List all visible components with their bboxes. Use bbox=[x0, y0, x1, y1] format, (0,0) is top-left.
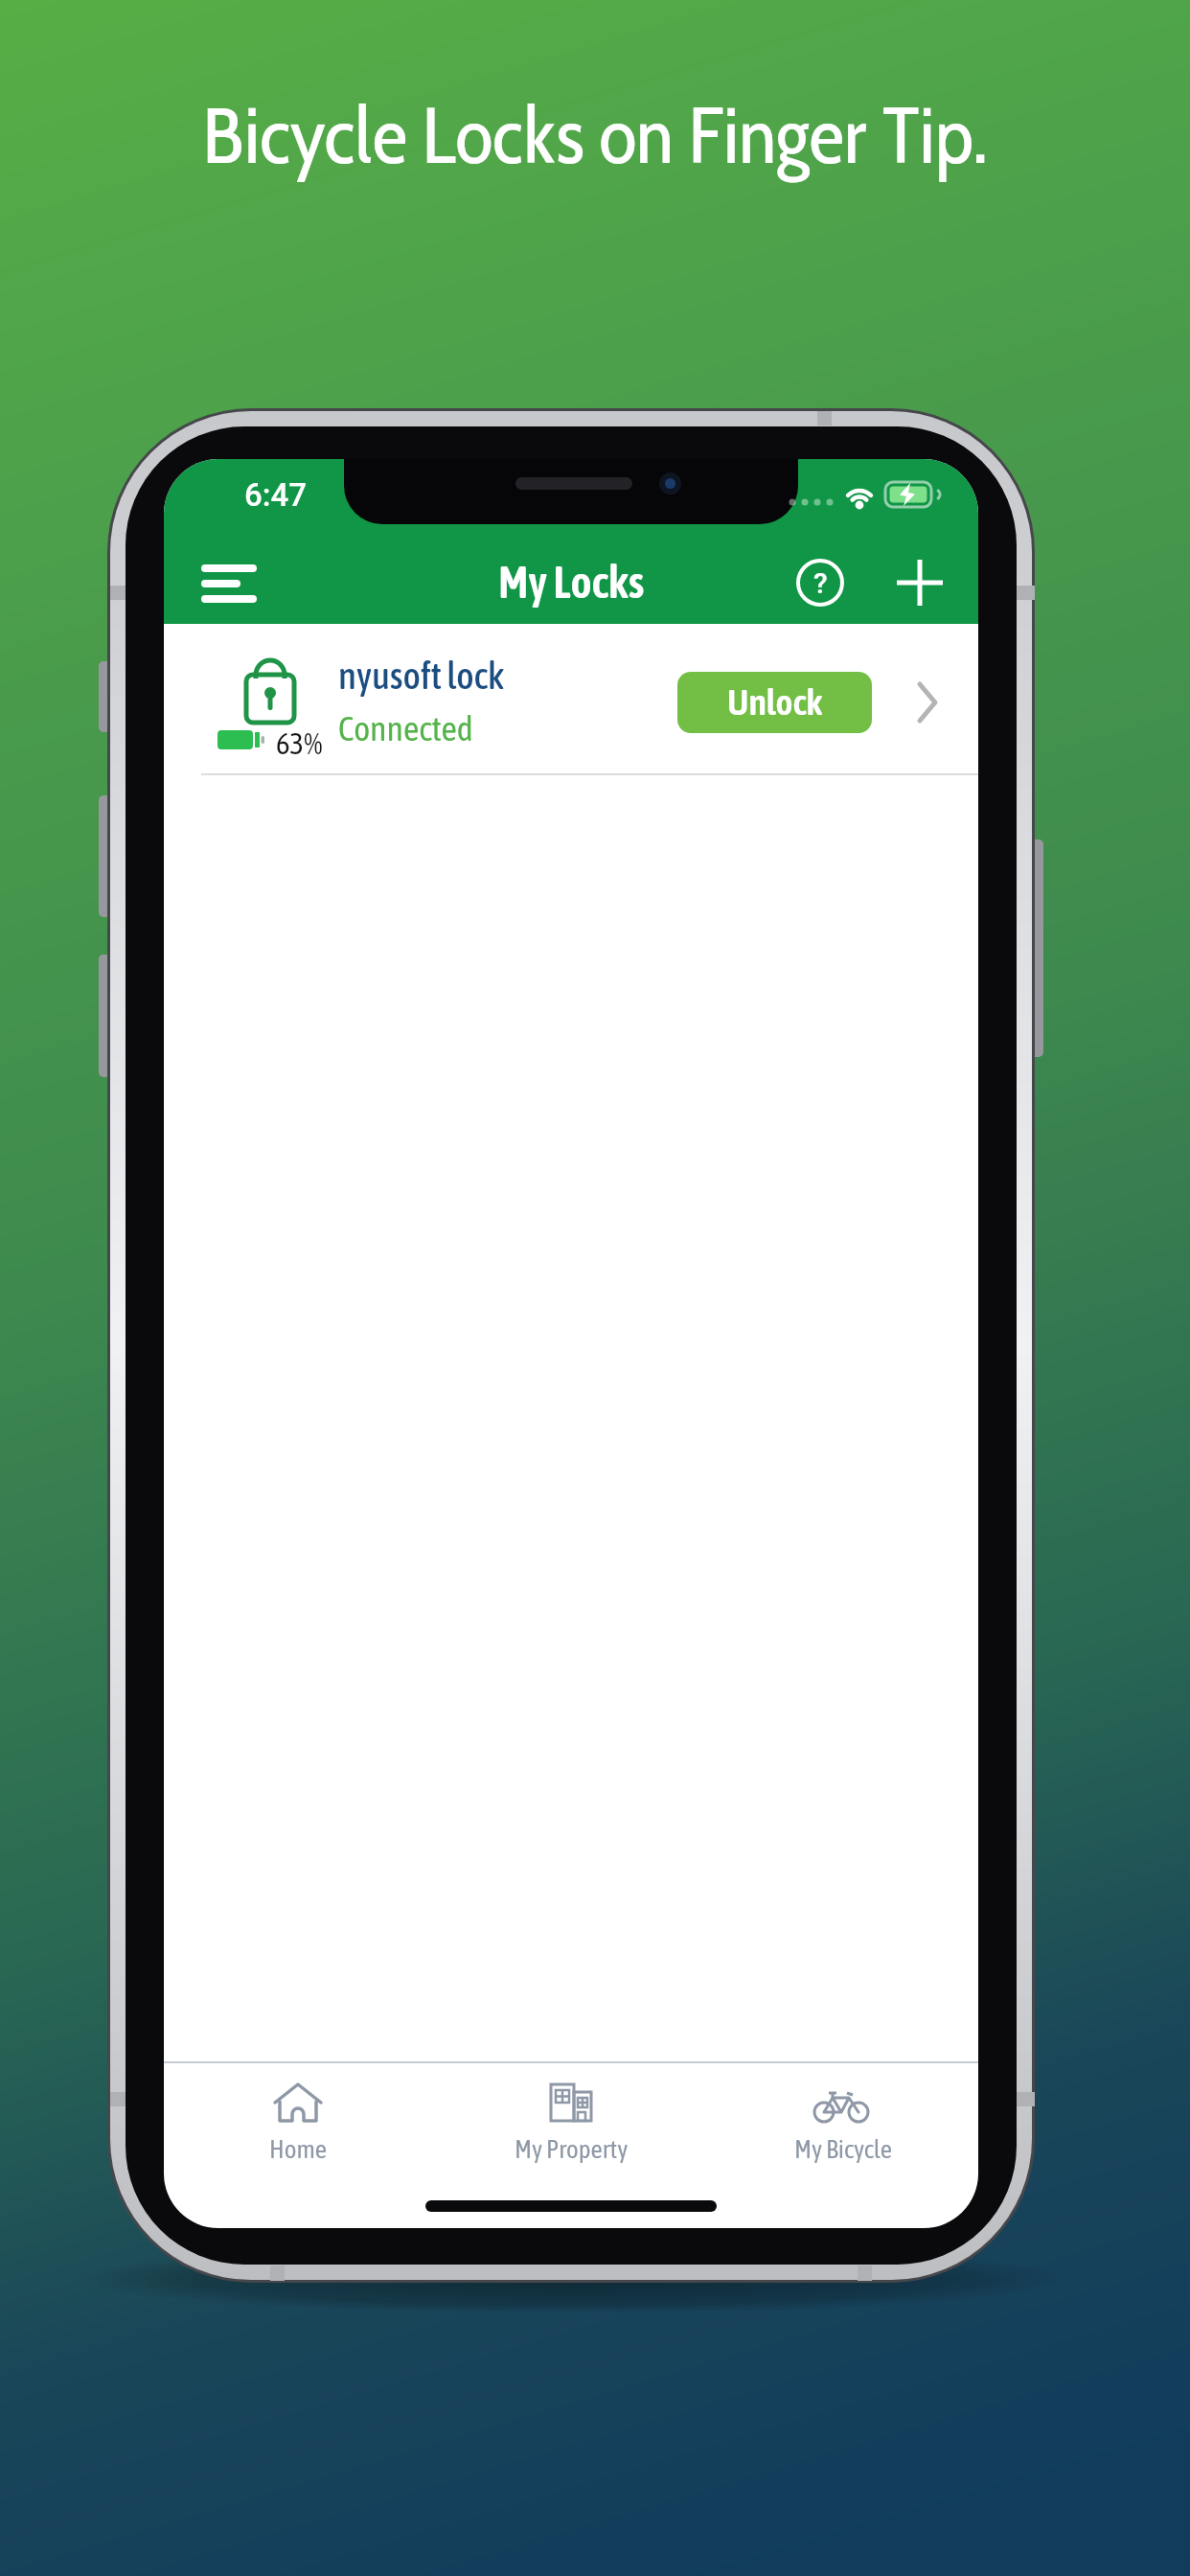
staticText: Home bbox=[269, 2134, 328, 2164]
staticText: Unlock bbox=[727, 681, 823, 724]
button[interactable]: ? bbox=[784, 546, 857, 619]
button[interactable]: Unlock bbox=[677, 672, 872, 733]
button[interactable] bbox=[883, 546, 956, 619]
staticText: Connected bbox=[338, 708, 473, 747]
staticText: Bicycle Locks on Finger Tip. bbox=[0, 87, 1190, 183]
button[interactable] bbox=[183, 547, 279, 618]
button[interactable] bbox=[193, 2065, 403, 2171]
button[interactable] bbox=[466, 2065, 676, 2171]
staticText: My Property bbox=[515, 2134, 629, 2164]
button[interactable] bbox=[164, 624, 978, 775]
staticText: My Bicycle bbox=[794, 2134, 892, 2164]
staticText: nyusoft lock bbox=[338, 655, 505, 697]
staticText: 6:47 bbox=[244, 476, 308, 514]
staticText: My Locks bbox=[498, 556, 645, 608]
button[interactable] bbox=[738, 2065, 949, 2171]
staticText: 63% bbox=[276, 726, 323, 759]
staticText: ? bbox=[813, 566, 828, 600]
